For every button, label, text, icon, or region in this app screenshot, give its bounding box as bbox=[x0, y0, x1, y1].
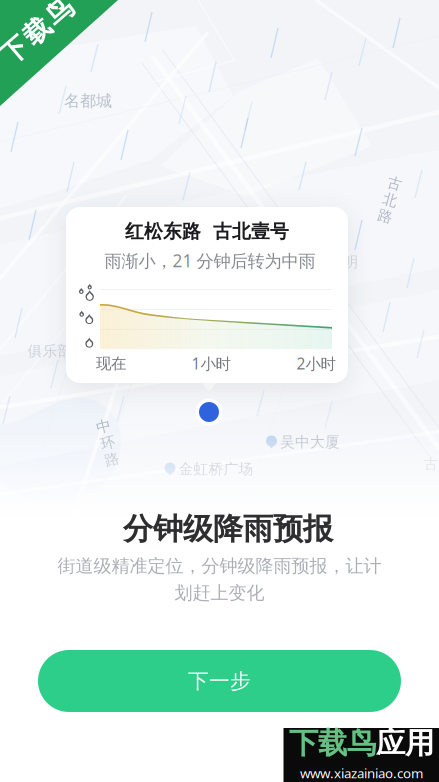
staticText: 下一步 bbox=[188, 668, 251, 694]
staticText: 分钟级降雨预报 bbox=[123, 510, 333, 548]
staticText: 中 bbox=[100, 417, 115, 435]
staticText: 路 bbox=[382, 208, 397, 226]
staticText: 下载鸟 bbox=[289, 725, 376, 761]
staticText: 下载鸟 bbox=[0, 15, 80, 47]
staticText: 应用 bbox=[376, 725, 434, 761]
staticText: 红松东路 古北壹号 bbox=[125, 220, 289, 243]
staticText: 雨渐小，21 分钟后转为中雨 bbox=[104, 249, 315, 272]
staticText: 街道级精准定位，分钟级降雨预报，让计 bbox=[57, 555, 381, 577]
staticText: www.xiazainiao.com bbox=[300, 764, 423, 782]
staticText: 现在 bbox=[96, 354, 126, 373]
staticText: 名都城 bbox=[64, 91, 112, 111]
staticText: 俱乐部 bbox=[27, 342, 72, 360]
staticText: 金虹桥广场 bbox=[178, 460, 253, 478]
button[interactable]: 下一步 bbox=[38, 650, 401, 712]
staticText: 明 bbox=[343, 253, 358, 271]
staticText: 1小时 bbox=[191, 353, 230, 374]
staticText: 古 bbox=[423, 455, 438, 473]
staticText: 环 bbox=[100, 434, 115, 452]
staticText: 路 bbox=[100, 451, 115, 469]
staticText: 古 bbox=[382, 174, 397, 192]
staticText: 吴中大厦 bbox=[280, 433, 340, 451]
staticText: 划赶上变化 bbox=[174, 582, 264, 604]
staticText: 北 bbox=[382, 191, 397, 209]
staticText: 2小时 bbox=[296, 353, 335, 374]
